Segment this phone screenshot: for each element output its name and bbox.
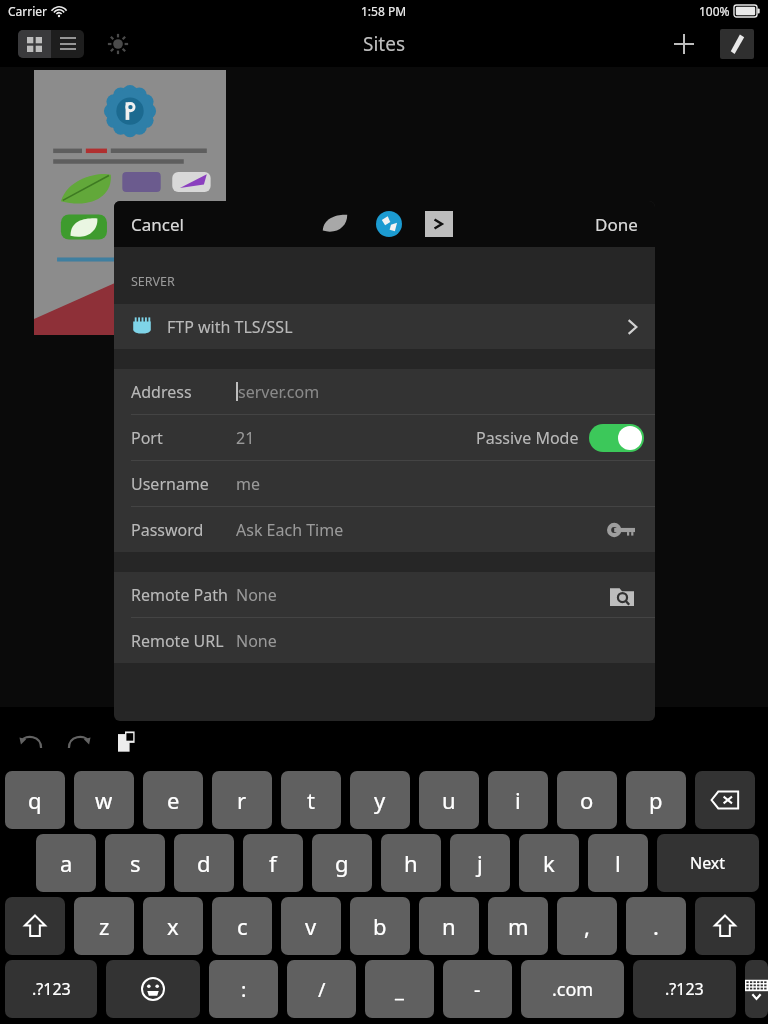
button[interactable]: Emoji	[106, 960, 200, 1018]
staticText: Address	[131, 381, 192, 403]
button[interactable]: .	[626, 897, 686, 955]
staticText: i	[515, 785, 521, 815]
staticText: w	[95, 785, 113, 815]
button[interactable]: z	[74, 897, 134, 955]
staticText: SERVER	[131, 273, 175, 290]
button[interactable]: x	[143, 897, 203, 955]
button[interactable]: i	[488, 771, 548, 829]
button[interactable]: v	[281, 897, 341, 955]
staticText: o	[580, 785, 594, 815]
button[interactable]: Username	[114, 461, 655, 506]
button[interactable]: Add site	[662, 22, 706, 66]
button[interactable]: Brightness	[98, 24, 138, 64]
button[interactable]: Passive Mode	[476, 424, 644, 452]
button[interactable]: n	[419, 897, 479, 955]
staticText: Done	[595, 213, 638, 236]
button[interactable]: t	[281, 771, 341, 829]
staticText: y	[374, 785, 386, 815]
staticText: ,	[584, 911, 590, 941]
button[interactable]: m	[488, 897, 548, 955]
button[interactable]: q	[5, 771, 65, 829]
button[interactable]: /	[287, 960, 356, 1018]
button[interactable]: _	[365, 960, 434, 1018]
button[interactable]: Terminal	[425, 211, 453, 237]
staticText: Cancel	[131, 213, 184, 236]
button[interactable]: Files	[317, 206, 353, 242]
button[interactable]: Cancel	[118, 205, 197, 244]
button[interactable]: Paste	[104, 719, 150, 765]
button[interactable]: k	[519, 834, 579, 892]
button[interactable]: o	[557, 771, 617, 829]
button[interactable]: 21	[236, 427, 255, 449]
button[interactable]: Edit	[720, 29, 754, 59]
button[interactable]: Password options	[604, 518, 638, 542]
button[interactable]: g	[312, 834, 372, 892]
button[interactable]: Address	[114, 369, 655, 414]
button[interactable]: FTP with TLS/SSL	[114, 304, 655, 349]
staticText: n	[442, 911, 456, 941]
button[interactable]: Password	[114, 507, 655, 552]
staticText: r	[237, 785, 247, 815]
button[interactable]: Remote Path	[114, 572, 655, 617]
staticText: s	[130, 848, 141, 878]
staticText: u	[442, 785, 456, 815]
button[interactable]: r	[212, 771, 272, 829]
button[interactable]: b	[350, 897, 410, 955]
button[interactable]: Done	[582, 205, 651, 244]
staticText: 100%	[699, 3, 730, 19]
button[interactable]: y	[350, 771, 410, 829]
button[interactable]: Hide keyboard	[745, 960, 768, 1018]
staticText: g	[335, 848, 349, 878]
button[interactable]: Undo	[8, 719, 54, 765]
button[interactable]: a	[36, 834, 96, 892]
staticText: q	[28, 785, 42, 815]
staticText: .	[653, 911, 659, 941]
staticText: me	[236, 473, 260, 495]
button[interactable]: ,	[557, 897, 617, 955]
staticText: Carrier	[8, 3, 48, 19]
staticText: Port	[131, 427, 163, 449]
button[interactable]: c	[212, 897, 272, 955]
staticText: p	[649, 785, 663, 815]
button[interactable]: Next	[657, 834, 759, 892]
staticText: None	[236, 584, 277, 606]
button[interactable]: w	[74, 771, 134, 829]
button[interactable]: Shift	[695, 897, 755, 955]
button[interactable]: Shift	[5, 897, 65, 955]
button[interactable]: Port	[131, 427, 236, 449]
button[interactable]: Browser	[371, 206, 407, 242]
staticText: Next	[690, 852, 726, 874]
button[interactable]: Redo	[56, 719, 102, 765]
button[interactable]: p	[626, 771, 686, 829]
staticText: _	[395, 976, 404, 1003]
staticText: z	[99, 911, 110, 941]
staticText: c	[237, 911, 248, 941]
button[interactable]: :	[209, 960, 278, 1018]
button[interactable]: -	[443, 960, 512, 1018]
button[interactable]: Backspace	[695, 771, 755, 829]
button[interactable]: u	[419, 771, 479, 829]
staticText: :	[241, 976, 247, 1003]
staticText: Sites	[363, 31, 406, 57]
button[interactable]: d	[174, 834, 234, 892]
button[interactable]	[34, 70, 226, 335]
button[interactable]: f	[243, 834, 303, 892]
button[interactable]: Remote URL	[114, 618, 655, 663]
button[interactable]: .?123	[5, 960, 97, 1018]
button[interactable]: s	[105, 834, 165, 892]
button[interactable]: Browse remote path	[606, 579, 638, 611]
staticText: Username	[131, 473, 209, 495]
button[interactable]: e	[143, 771, 203, 829]
button[interactable]: .?123	[633, 960, 736, 1018]
button[interactable]: .com	[521, 960, 624, 1018]
staticText: a	[60, 848, 73, 878]
staticText: m	[508, 911, 529, 941]
staticText: j	[477, 848, 483, 878]
button[interactable]: j	[450, 834, 510, 892]
button[interactable]: l	[588, 834, 648, 892]
button[interactable]: h	[381, 834, 441, 892]
staticText: Passive Mode	[476, 427, 579, 449]
staticText: v	[305, 911, 317, 941]
button[interactable]: View mode	[18, 30, 84, 58]
staticText: b	[373, 911, 387, 941]
